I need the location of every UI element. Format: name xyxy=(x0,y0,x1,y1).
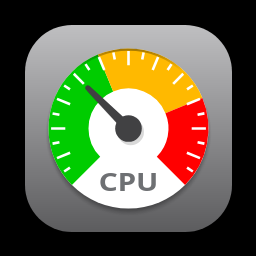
staticText: CPU xyxy=(98,164,159,198)
button[interactable]: CPU gauge xyxy=(25,25,232,232)
